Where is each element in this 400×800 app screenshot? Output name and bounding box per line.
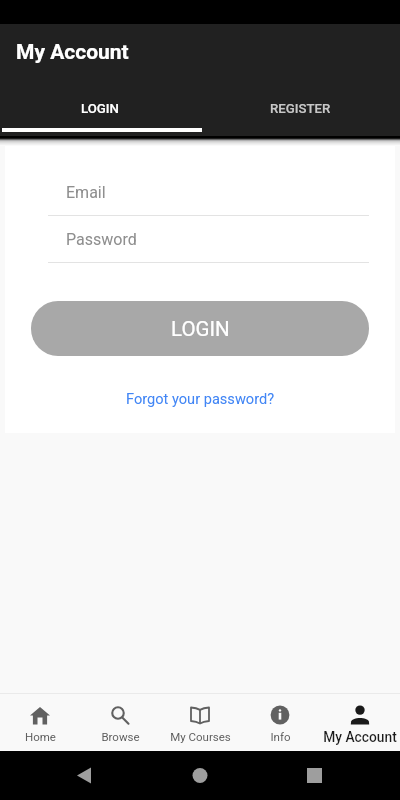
button[interactable]: Home — [0, 694, 80, 751]
staticText: Forgot your password? — [126, 390, 275, 407]
button[interactable]: My Account — [320, 694, 400, 751]
button[interactable]: LOGIN — [0, 84, 200, 132]
staticText: Password — [66, 230, 137, 249]
button[interactable]: Browse — [80, 694, 160, 751]
staticText: Email — [66, 183, 106, 202]
staticText: My Account — [16, 40, 129, 65]
staticText: LOGIN — [171, 317, 230, 341]
button[interactable]: LOGIN — [31, 301, 369, 356]
staticText: Info — [270, 730, 291, 743]
button[interactable]: My Courses — [160, 694, 240, 751]
button[interactable]: REGISTER — [200, 84, 400, 132]
staticText: My Courses — [170, 730, 231, 743]
staticText: My Account — [323, 729, 397, 745]
staticText: REGISTER — [270, 101, 331, 116]
button[interactable]: Info — [240, 694, 320, 751]
staticText: Browse — [101, 730, 140, 743]
staticText: LOGIN — [81, 101, 119, 116]
button[interactable]: Forgot your password? — [120, 387, 281, 410]
staticText: Home — [25, 730, 56, 743]
